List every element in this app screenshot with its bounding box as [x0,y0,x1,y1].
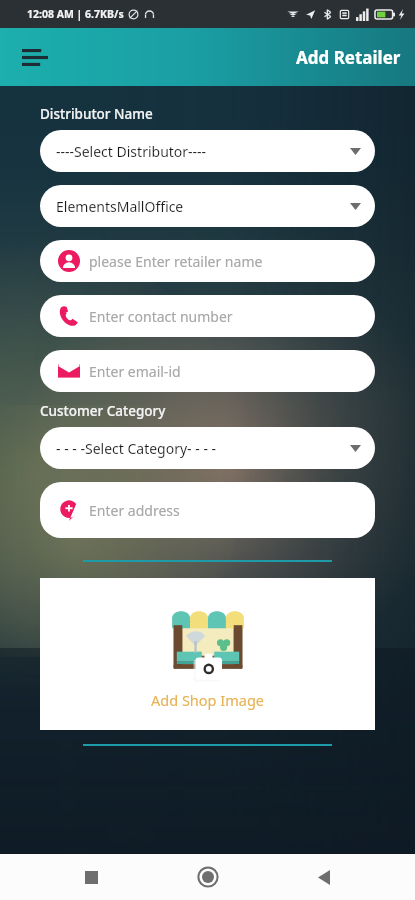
button[interactable]: Back [298,854,350,900]
staticText: Add Retailer [296,46,401,69]
button[interactable]: Home [182,854,234,900]
staticText: ElementsMallOffice [56,197,184,216]
staticText: Enter contact number [89,307,233,326]
button[interactable]: ----Select Distributor---- [40,130,375,172]
staticText: ----Select Distributor---- [56,142,207,161]
button[interactable]: please Enter retailer name [40,240,375,282]
button[interactable]: Enter email-id [40,350,375,392]
staticText: Add Shop Image [151,690,264,710]
button[interactable]: - - - -Select Category- - - - [40,427,375,469]
button[interactable]: Enter contact number [40,295,375,337]
staticText: Enter email-id [89,362,181,381]
staticText: - - - -Select Category- - - - [56,439,217,458]
button[interactable]: Open navigation menu [14,36,56,78]
staticText: 12:08 AM | 6.7KB/s [27,7,124,21]
staticText: Customer Category [40,402,166,420]
staticText: please Enter retailer name [89,252,263,271]
button[interactable]: Add Shop Image [40,578,375,730]
staticText: Enter address [89,501,180,520]
button[interactable]: ElementsMallOffice [40,185,375,227]
button[interactable]: Enter address [40,482,375,538]
button[interactable]: Recent apps [65,854,117,900]
staticText: Distributor Name [40,105,153,123]
